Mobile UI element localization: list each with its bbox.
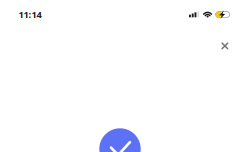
- button[interactable]: Done: [99, 128, 141, 152]
- button[interactable]: Close: [213, 34, 236, 57]
- staticText: 11:14: [18, 8, 41, 21]
